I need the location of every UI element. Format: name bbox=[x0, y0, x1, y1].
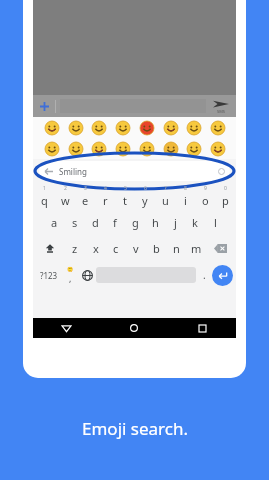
button[interactable]: j bbox=[165, 209, 185, 235]
staticText: l bbox=[214, 215, 217, 230]
staticText: m bbox=[191, 241, 202, 256]
button[interactable]: Smiling bbox=[39, 161, 230, 181]
button[interactable]: Emoji bbox=[90, 119, 107, 136]
staticText: c bbox=[113, 241, 119, 256]
button[interactable]: Home bbox=[100, 318, 168, 338]
staticText: u bbox=[162, 193, 169, 208]
button[interactable]: m bbox=[186, 235, 206, 261]
staticText: , bbox=[69, 272, 72, 284]
button[interactable]: z bbox=[64, 235, 85, 261]
button[interactable]: Emoji bbox=[185, 140, 202, 157]
button[interactable]: 8 bbox=[175, 183, 195, 209]
button[interactable]: Emoji bbox=[90, 140, 107, 157]
staticText: . bbox=[203, 268, 206, 282]
staticText: 3 bbox=[84, 185, 87, 192]
staticText: 7 bbox=[164, 185, 167, 192]
button[interactable]: Emoji bbox=[43, 119, 60, 136]
staticText: i bbox=[184, 193, 187, 208]
button[interactable]: x bbox=[85, 235, 106, 261]
staticText: q bbox=[41, 193, 48, 208]
staticText: n bbox=[173, 241, 180, 256]
staticText: 4 bbox=[104, 185, 107, 192]
button[interactable]: 1 bbox=[34, 183, 55, 209]
button[interactable]: c bbox=[106, 235, 126, 261]
button[interactable]: n bbox=[166, 235, 186, 261]
staticText: 8 bbox=[184, 185, 187, 192]
staticText: 0 bbox=[224, 185, 227, 192]
button[interactable]: Emoji bbox=[138, 140, 155, 157]
staticText: s bbox=[72, 215, 78, 230]
button[interactable]: 7 bbox=[155, 183, 175, 209]
staticText: v bbox=[133, 241, 139, 256]
button[interactable]: Send SMS bbox=[206, 95, 236, 117]
staticText: r bbox=[103, 193, 108, 208]
staticText: a bbox=[51, 215, 58, 230]
button[interactable]: g bbox=[125, 209, 145, 235]
button[interactable]: Back bbox=[33, 318, 100, 338]
staticText: o bbox=[202, 193, 209, 208]
button[interactable]: 4 bbox=[95, 183, 115, 209]
staticText: 5 bbox=[124, 185, 127, 192]
staticText: 1 bbox=[43, 185, 46, 192]
button[interactable]: 2 bbox=[55, 183, 75, 209]
button[interactable]: 3 bbox=[75, 183, 95, 209]
staticText: x bbox=[93, 241, 99, 256]
staticText: 🙂 bbox=[67, 266, 74, 272]
button[interactable]: Emoji bbox=[209, 119, 226, 136]
button[interactable]: s bbox=[65, 209, 85, 235]
button[interactable]: Change language bbox=[78, 261, 96, 289]
button[interactable]: 6 bbox=[135, 183, 155, 209]
staticText: Smiling bbox=[59, 166, 87, 177]
button[interactable]: Backspace bbox=[206, 235, 234, 261]
staticText: y bbox=[142, 193, 148, 208]
staticText: z bbox=[72, 241, 78, 256]
button[interactable]: b bbox=[146, 235, 166, 261]
button[interactable]: Enter bbox=[212, 265, 233, 286]
staticText: 2 bbox=[64, 185, 67, 192]
staticText: 9 bbox=[204, 185, 207, 192]
button[interactable]: Period bbox=[196, 261, 212, 289]
button[interactable]: 5 bbox=[115, 183, 135, 209]
staticText: p bbox=[222, 193, 229, 208]
button[interactable]: Emoji bbox=[209, 140, 226, 157]
button[interactable]: l bbox=[205, 209, 225, 235]
staticText: g bbox=[132, 215, 139, 230]
button[interactable]: k bbox=[185, 209, 205, 235]
button[interactable]: a bbox=[44, 209, 65, 235]
staticText: 6 bbox=[144, 185, 147, 192]
button[interactable]: v bbox=[126, 235, 146, 261]
button[interactable]: Emoji bbox=[114, 140, 131, 157]
button[interactable]: Add attachment bbox=[33, 95, 55, 117]
button[interactable]: Emoji bbox=[67, 140, 84, 157]
staticText: e bbox=[82, 193, 89, 208]
button[interactable]: 0 bbox=[215, 183, 235, 209]
button[interactable]: Comma bbox=[62, 261, 78, 289]
button[interactable]: f bbox=[105, 209, 125, 235]
staticText: Emoji search. bbox=[82, 417, 188, 440]
staticText: b bbox=[153, 241, 160, 256]
button[interactable]: Emoji bbox=[67, 119, 84, 136]
staticText: j bbox=[174, 215, 177, 230]
button[interactable]: Emoji bbox=[185, 119, 202, 136]
button[interactable]: Recents bbox=[168, 318, 236, 338]
staticText: k bbox=[192, 215, 198, 230]
button[interactable]: Emoji bbox=[162, 140, 179, 157]
staticText: f bbox=[113, 215, 117, 230]
staticText: t bbox=[123, 193, 127, 208]
button[interactable]: ?123 bbox=[36, 261, 62, 289]
button[interactable]: Shift bbox=[35, 235, 64, 261]
button[interactable]: Emoji bbox=[162, 119, 179, 136]
button[interactable]: Emoji bbox=[138, 119, 155, 136]
staticText: SMS bbox=[217, 109, 226, 114]
staticText: h bbox=[152, 215, 159, 230]
button[interactable]: 9 bbox=[195, 183, 215, 209]
button[interactable]: d bbox=[85, 209, 105, 235]
button[interactable]: Emoji bbox=[114, 119, 131, 136]
button[interactable]: Emoji bbox=[43, 140, 60, 157]
staticText: w bbox=[61, 193, 70, 208]
button[interactable]: h bbox=[145, 209, 165, 235]
staticText: ?123 bbox=[40, 270, 58, 281]
staticText: d bbox=[92, 215, 99, 230]
